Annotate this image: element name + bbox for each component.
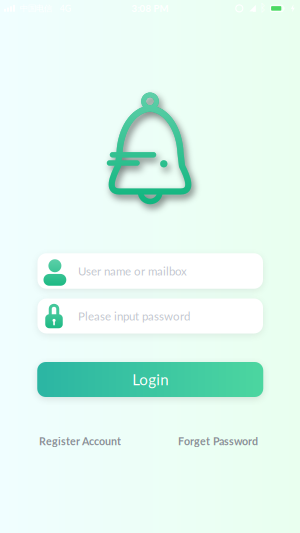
staticText: Please input password	[78, 309, 190, 323]
staticText: User name or mailbox	[78, 264, 187, 278]
staticText: 3:08 PM	[131, 2, 168, 14]
button[interactable]: User name or mailbox	[37, 253, 263, 289]
button[interactable]: Register Account	[39, 435, 121, 447]
staticText: Forget Password	[178, 435, 258, 447]
staticText: ᛒ	[260, 3, 266, 14]
staticText: 4G	[60, 3, 71, 14]
button[interactable]: Please input password	[37, 298, 263, 333]
staticText: Login	[132, 370, 168, 389]
staticText: Register Account	[39, 435, 121, 447]
button[interactable]: Forget Password	[178, 435, 258, 447]
button[interactable]: Login	[37, 362, 263, 397]
staticText: 中国电信	[20, 3, 52, 14]
